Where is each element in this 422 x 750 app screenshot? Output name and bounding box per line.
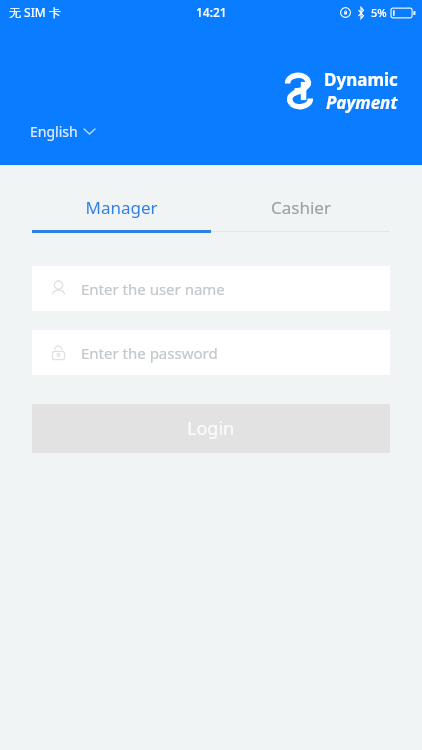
staticText: Enter the password [81, 343, 218, 363]
button[interactable]: Cashier [211, 190, 390, 224]
staticText: Dynamic [324, 68, 398, 91]
staticText: 5% [371, 5, 387, 20]
staticText: English [30, 122, 78, 141]
staticText: 14:21 [196, 4, 227, 20]
button[interactable]: Enter the user name [32, 266, 390, 311]
staticText: Login [187, 416, 235, 441]
staticText: Manager [85, 196, 158, 219]
button[interactable]: Manager [32, 190, 211, 224]
staticText: Payment [326, 91, 398, 114]
staticText: 无 SIM 卡 [9, 4, 61, 20]
button[interactable]: Enter the password [32, 330, 390, 375]
staticText: Cashier [271, 196, 331, 219]
button[interactable]: English [24, 118, 101, 145]
staticText: Enter the user name [81, 279, 225, 299]
